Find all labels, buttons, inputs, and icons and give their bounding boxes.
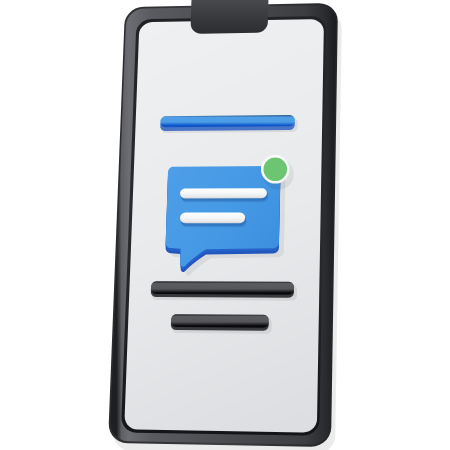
button[interactable]: 3D illustration of a phone showing a cha… xyxy=(0,0,450,450)
